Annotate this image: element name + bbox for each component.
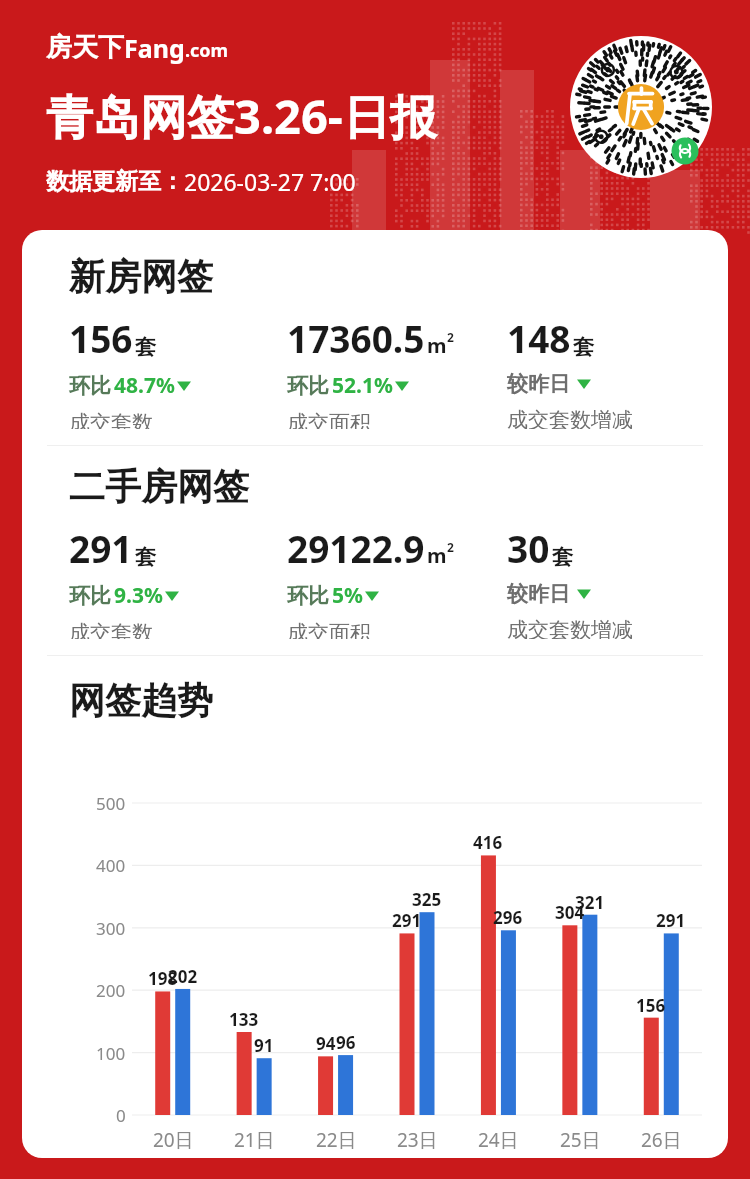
staticText: 156: [69, 313, 133, 363]
staticText: m: [427, 332, 447, 359]
staticText: 数据更新至：: [46, 167, 184, 196]
staticText: 成交面积: [287, 620, 371, 639]
staticText: 17360.5: [287, 313, 425, 363]
staticText: 291: [69, 523, 133, 573]
staticText: 0: [116, 1104, 126, 1127]
staticText: 325: [412, 888, 442, 911]
staticText: .com: [185, 38, 229, 63]
staticText: 133: [229, 1008, 259, 1031]
staticText: 304: [555, 901, 585, 924]
staticText: 48.7%: [114, 371, 175, 400]
staticText: 成交套数: [69, 410, 153, 429]
staticText: 套: [135, 544, 156, 570]
staticText: 22日: [316, 1127, 357, 1153]
staticText: 网签趋势: [69, 678, 213, 723]
staticText: 291: [656, 909, 686, 932]
staticText: 148: [507, 313, 571, 363]
staticText: 416: [473, 831, 503, 854]
staticText: 24日: [478, 1127, 519, 1153]
staticText: 21日: [234, 1127, 275, 1153]
staticText: 30: [507, 523, 550, 573]
staticText: 198: [148, 967, 178, 990]
staticText: 成交面积: [287, 410, 371, 429]
staticText: 成交套数增减: [507, 407, 633, 429]
staticText: 套: [135, 334, 156, 360]
staticText: 2026-03-27 7:00: [184, 166, 356, 197]
staticText: 环比: [287, 583, 329, 609]
staticText: 较昨日: [507, 371, 570, 397]
staticText: 环比: [69, 373, 111, 399]
staticText: 500: [96, 792, 126, 815]
staticText: 296: [493, 906, 523, 929]
staticText: 156: [636, 994, 666, 1017]
staticText: 26日: [641, 1127, 682, 1153]
button[interactable]: 扫码打开小程序: [570, 36, 712, 178]
staticText: 新房网签: [69, 254, 213, 299]
staticText: 96: [336, 1031, 356, 1054]
staticText: 房天下: [46, 31, 124, 64]
staticText: 200: [96, 979, 126, 1002]
staticText: 400: [96, 854, 126, 877]
button[interactable]: 156: [69, 313, 191, 429]
staticText: 套: [552, 544, 573, 570]
staticText: 2: [447, 329, 454, 345]
staticText: 环比: [287, 373, 329, 399]
staticText: 20日: [153, 1127, 194, 1153]
staticText: 套: [573, 334, 594, 360]
staticText: 25日: [560, 1127, 601, 1153]
staticText: 291: [392, 909, 422, 932]
staticText: 成交套数增减: [507, 617, 633, 639]
button[interactable]: 新房网签: [22, 230, 728, 1158]
staticText: 二手房网签: [69, 464, 249, 509]
staticText: 29122.9: [287, 523, 425, 573]
staticText: 300: [96, 917, 126, 940]
button[interactable]: 17360.5: [287, 313, 454, 429]
staticText: 100: [96, 1042, 126, 1065]
staticText: 23日: [397, 1127, 438, 1153]
staticText: 94: [316, 1032, 336, 1055]
button[interactable]: 291: [69, 523, 179, 639]
staticText: Fang: [124, 31, 185, 65]
button[interactable]: 29122.9: [287, 523, 454, 639]
staticText: 5%: [332, 581, 363, 610]
button[interactable]: 148: [507, 313, 633, 429]
staticText: m: [427, 542, 447, 569]
staticText: 2: [447, 539, 454, 555]
staticText: 成交套数: [69, 620, 153, 639]
button[interactable]: 30: [507, 523, 633, 639]
staticText: 91: [254, 1034, 274, 1057]
staticText: 环比: [69, 583, 111, 609]
staticText: 较昨日: [507, 581, 570, 607]
staticText: 52.1%: [332, 371, 393, 400]
staticText: 321: [575, 891, 605, 914]
staticText: 202: [168, 965, 198, 988]
staticText: 9.3%: [114, 581, 163, 610]
staticText: 青岛网签3.26-日报: [46, 84, 437, 148]
